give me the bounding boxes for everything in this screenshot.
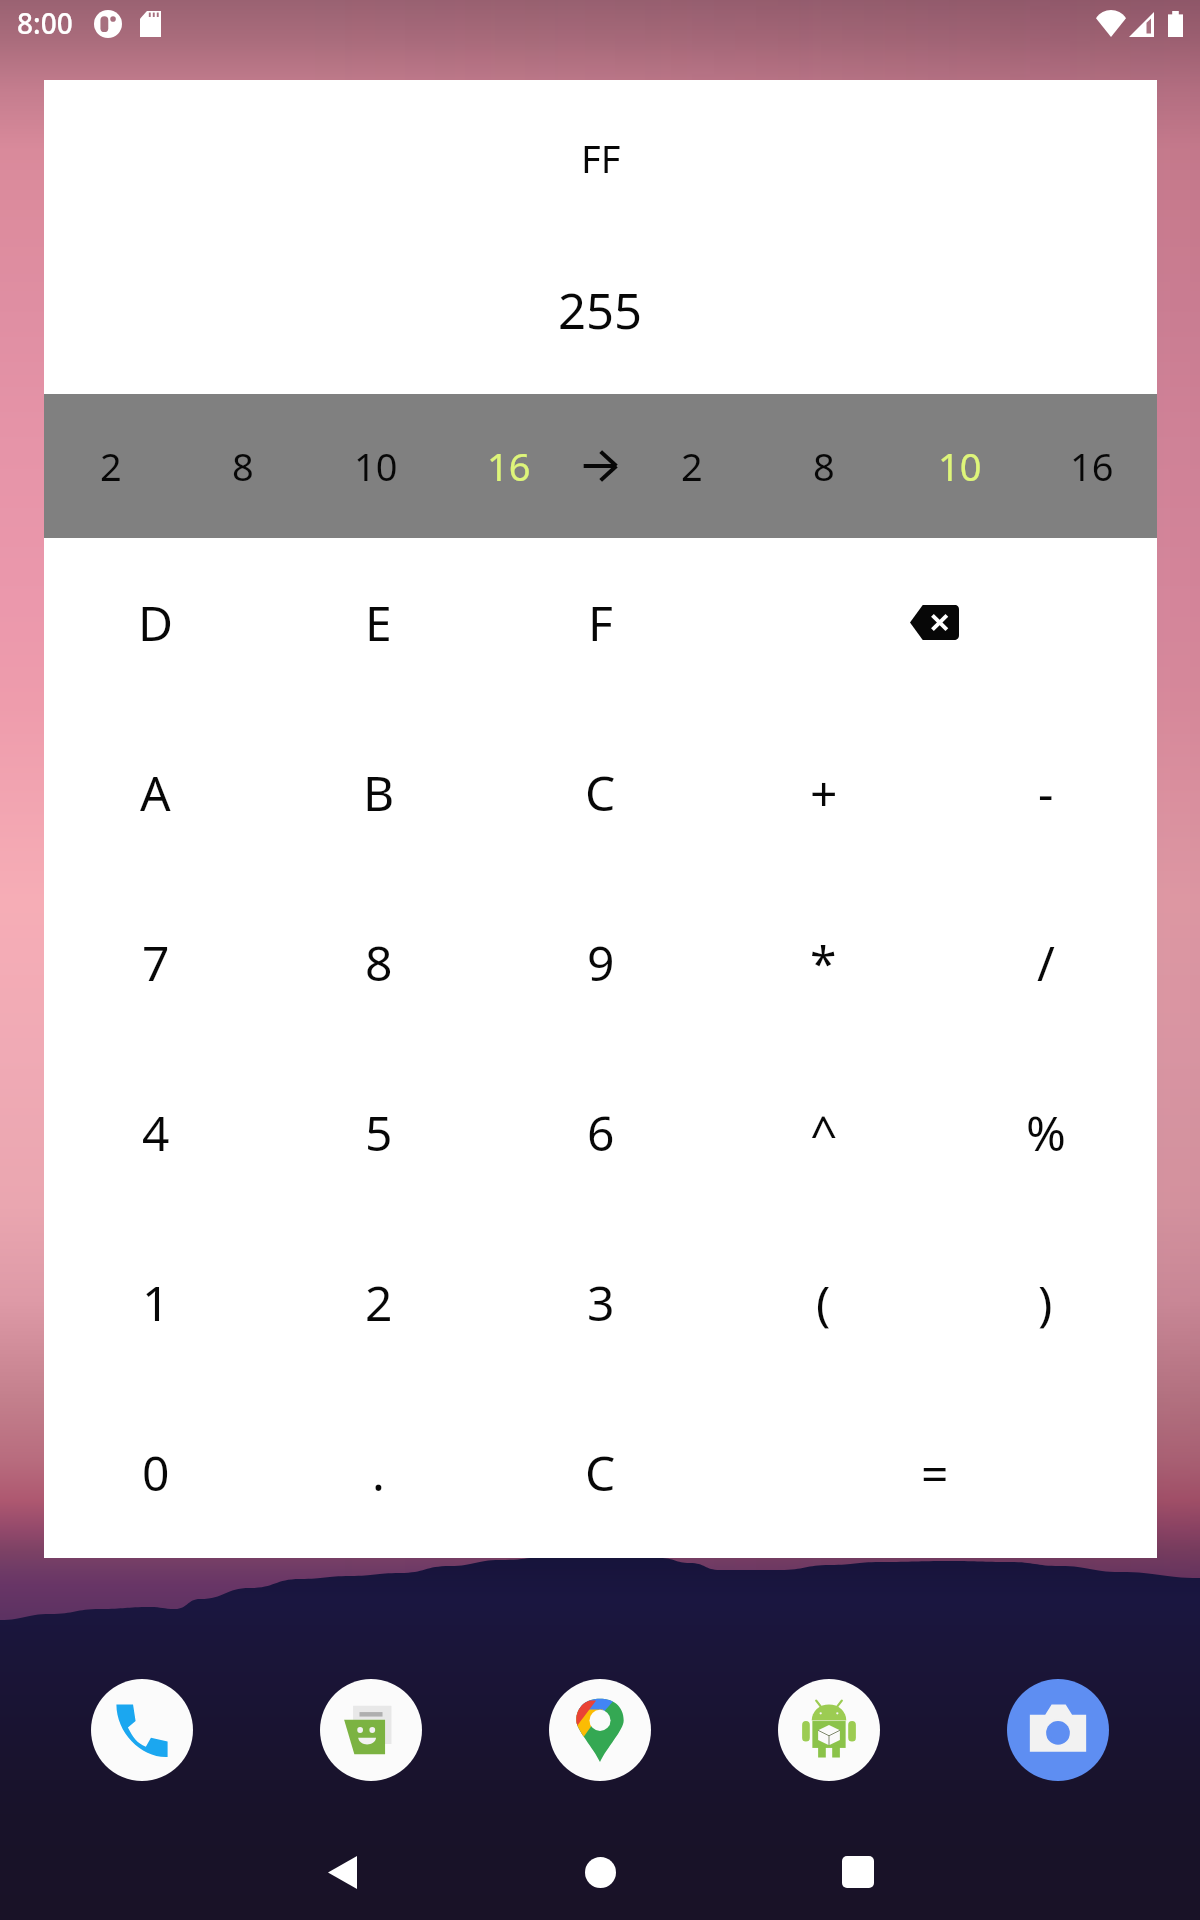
staticText: 10 <box>354 440 398 492</box>
staticText: 4 <box>142 1100 170 1165</box>
staticText: 3 <box>587 1270 615 1335</box>
button[interactable]: 3 <box>489 1217 712 1387</box>
button[interactable]: Convert <box>552 394 648 538</box>
other: Backspace <box>910 604 959 641</box>
button[interactable]: 7 <box>44 877 267 1047</box>
button[interactable]: Maps <box>549 1679 651 1781</box>
staticText: B <box>363 760 395 825</box>
staticText: 8 <box>365 930 393 995</box>
button[interactable]: / <box>934 877 1157 1047</box>
staticText: 2 <box>100 440 122 492</box>
staticText: . <box>372 1440 385 1505</box>
button[interactable]: Backspace <box>712 537 1157 707</box>
staticText: 16 <box>1070 440 1114 492</box>
button[interactable]: 9 <box>489 877 712 1047</box>
button[interactable]: C <box>489 707 712 877</box>
button[interactable]: Home <box>564 1836 636 1908</box>
staticText: ( <box>816 1270 831 1335</box>
button[interactable]: + <box>712 707 935 877</box>
staticText: 9 <box>587 930 615 995</box>
staticText: 7 <box>142 930 170 995</box>
button[interactable]: C <box>489 1387 712 1557</box>
staticText: A <box>140 760 171 825</box>
button[interactable]: 10 <box>320 394 432 538</box>
button[interactable]: Back <box>306 1836 378 1908</box>
button[interactable]: Phone <box>91 1679 193 1781</box>
button[interactable]: - <box>934 707 1157 877</box>
button[interactable]: 5 <box>267 1047 490 1217</box>
staticText: D <box>138 590 174 655</box>
button[interactable]: . <box>267 1387 490 1557</box>
staticText: 6 <box>587 1100 615 1165</box>
staticText: 8 <box>813 440 835 492</box>
staticText: 255 <box>558 277 643 344</box>
staticText: ) <box>1038 1270 1053 1335</box>
staticText: 10 <box>938 440 982 492</box>
button[interactable]: 6 <box>489 1047 712 1217</box>
button[interactable]: * <box>712 877 935 1047</box>
staticText: = <box>921 1440 949 1505</box>
button[interactable]: ( <box>712 1217 935 1387</box>
button[interactable]: F <box>489 537 712 707</box>
staticText: - <box>1038 760 1054 825</box>
button[interactable]: 10 <box>904 394 1016 538</box>
other: Notification <box>94 10 122 38</box>
staticText: FF <box>581 132 621 184</box>
staticText: C <box>585 1440 616 1505</box>
button[interactable]: 4 <box>44 1047 267 1217</box>
staticText: 8:00 <box>17 4 73 42</box>
staticText: + <box>810 760 838 825</box>
button[interactable]: E <box>267 537 490 707</box>
button[interactable]: A <box>44 707 267 877</box>
button[interactable]: Messages <box>320 1679 422 1781</box>
button[interactable]: 0 <box>44 1387 267 1557</box>
staticText: C <box>585 760 616 825</box>
button[interactable]: Recents <box>822 1836 894 1908</box>
staticText: 0 <box>142 1440 170 1505</box>
button[interactable]: 1 <box>44 1217 267 1387</box>
staticText: F <box>588 590 613 655</box>
staticText: 2 <box>365 1270 393 1335</box>
button[interactable]: 8 <box>768 394 880 538</box>
staticText: * <box>810 930 837 995</box>
staticText: 16 <box>487 440 531 492</box>
button[interactable]: 2 <box>55 394 167 538</box>
button[interactable]: 8 <box>267 877 490 1047</box>
button[interactable]: Play Store <box>778 1679 880 1781</box>
button[interactable]: 8 <box>187 394 299 538</box>
button[interactable]: 2 <box>267 1217 490 1387</box>
staticText: ^ <box>810 1100 838 1165</box>
button[interactable]: 2 <box>636 394 748 538</box>
staticText: 1 <box>142 1270 170 1335</box>
staticText: / <box>1037 930 1055 995</box>
button[interactable]: 16 <box>1036 394 1148 538</box>
staticText: 8 <box>232 440 254 492</box>
staticText: 2 <box>681 440 703 492</box>
button[interactable]: % <box>934 1047 1157 1217</box>
button[interactable]: 16 <box>453 394 565 538</box>
button[interactable]: B <box>267 707 490 877</box>
staticText: 5 <box>365 1100 393 1165</box>
button[interactable]: = <box>712 1387 1157 1557</box>
staticText: % <box>1026 1100 1066 1165</box>
button[interactable]: D <box>44 537 267 707</box>
staticText: E <box>365 590 392 655</box>
button[interactable]: ) <box>934 1217 1157 1387</box>
button[interactable]: ^ <box>712 1047 935 1217</box>
button[interactable]: Camera <box>1007 1679 1109 1781</box>
